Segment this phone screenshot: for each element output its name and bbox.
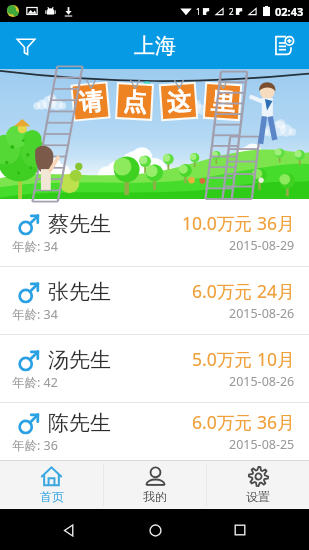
- staticText: 点: [122, 86, 148, 118]
- button[interactable]: 陈先生: [0, 403, 309, 460]
- staticText: 我的: [143, 489, 167, 504]
- staticText: 里: [210, 86, 236, 118]
- staticText: 年龄: 34: [12, 306, 58, 323]
- staticText: 2015-08-26: [229, 305, 295, 322]
- button[interactable]: Recents: [223, 513, 257, 547]
- staticText: 张先生: [48, 279, 111, 305]
- staticText: 汤先生: [48, 347, 111, 373]
- staticText: 1: [196, 6, 201, 17]
- staticText: 36月: [257, 211, 295, 235]
- staticText: 蔡先生: [48, 211, 111, 237]
- button[interactable]: Back: [52, 513, 86, 547]
- staticText: 2015-08-25: [229, 436, 295, 453]
- button[interactable]: Home: [138, 513, 172, 547]
- staticText: 2: [229, 6, 234, 17]
- staticText: 10.0万元: [182, 211, 252, 235]
- staticText: 6.0万元: [192, 410, 252, 434]
- button[interactable]: 设置: [207, 461, 309, 509]
- button[interactable]: 汤先生: [0, 335, 309, 403]
- staticText: 02:43: [275, 4, 304, 19]
- staticText: 24月: [257, 279, 295, 303]
- staticText: 36月: [257, 410, 295, 434]
- staticText: 首页: [40, 489, 64, 504]
- staticText: 陈先生: [48, 410, 111, 436]
- button[interactable]: 请: [0, 69, 309, 199]
- button[interactable]: Filter: [0, 22, 52, 69]
- button[interactable]: 我的: [104, 461, 206, 509]
- button[interactable]: Add note: [257, 22, 309, 69]
- staticText: 年龄: 34: [12, 238, 58, 255]
- staticText: 这: [166, 86, 192, 118]
- button[interactable]: 张先生: [0, 267, 309, 335]
- staticText: 5.0万元: [192, 347, 252, 371]
- staticText: 年龄: 42: [12, 374, 58, 391]
- staticText: 6.0万元: [192, 279, 252, 303]
- button[interactable]: 蔡先生: [0, 199, 309, 267]
- button[interactable]: 首页: [0, 461, 103, 509]
- staticText: 设置: [246, 489, 270, 504]
- staticText: 请: [78, 86, 104, 118]
- staticText: 2015-08-26: [229, 373, 295, 390]
- staticText: 2015-08-29: [229, 237, 295, 254]
- staticText: 10月: [257, 347, 295, 371]
- staticText: 年龄: 36: [12, 437, 58, 454]
- staticText: 上海: [134, 33, 176, 59]
